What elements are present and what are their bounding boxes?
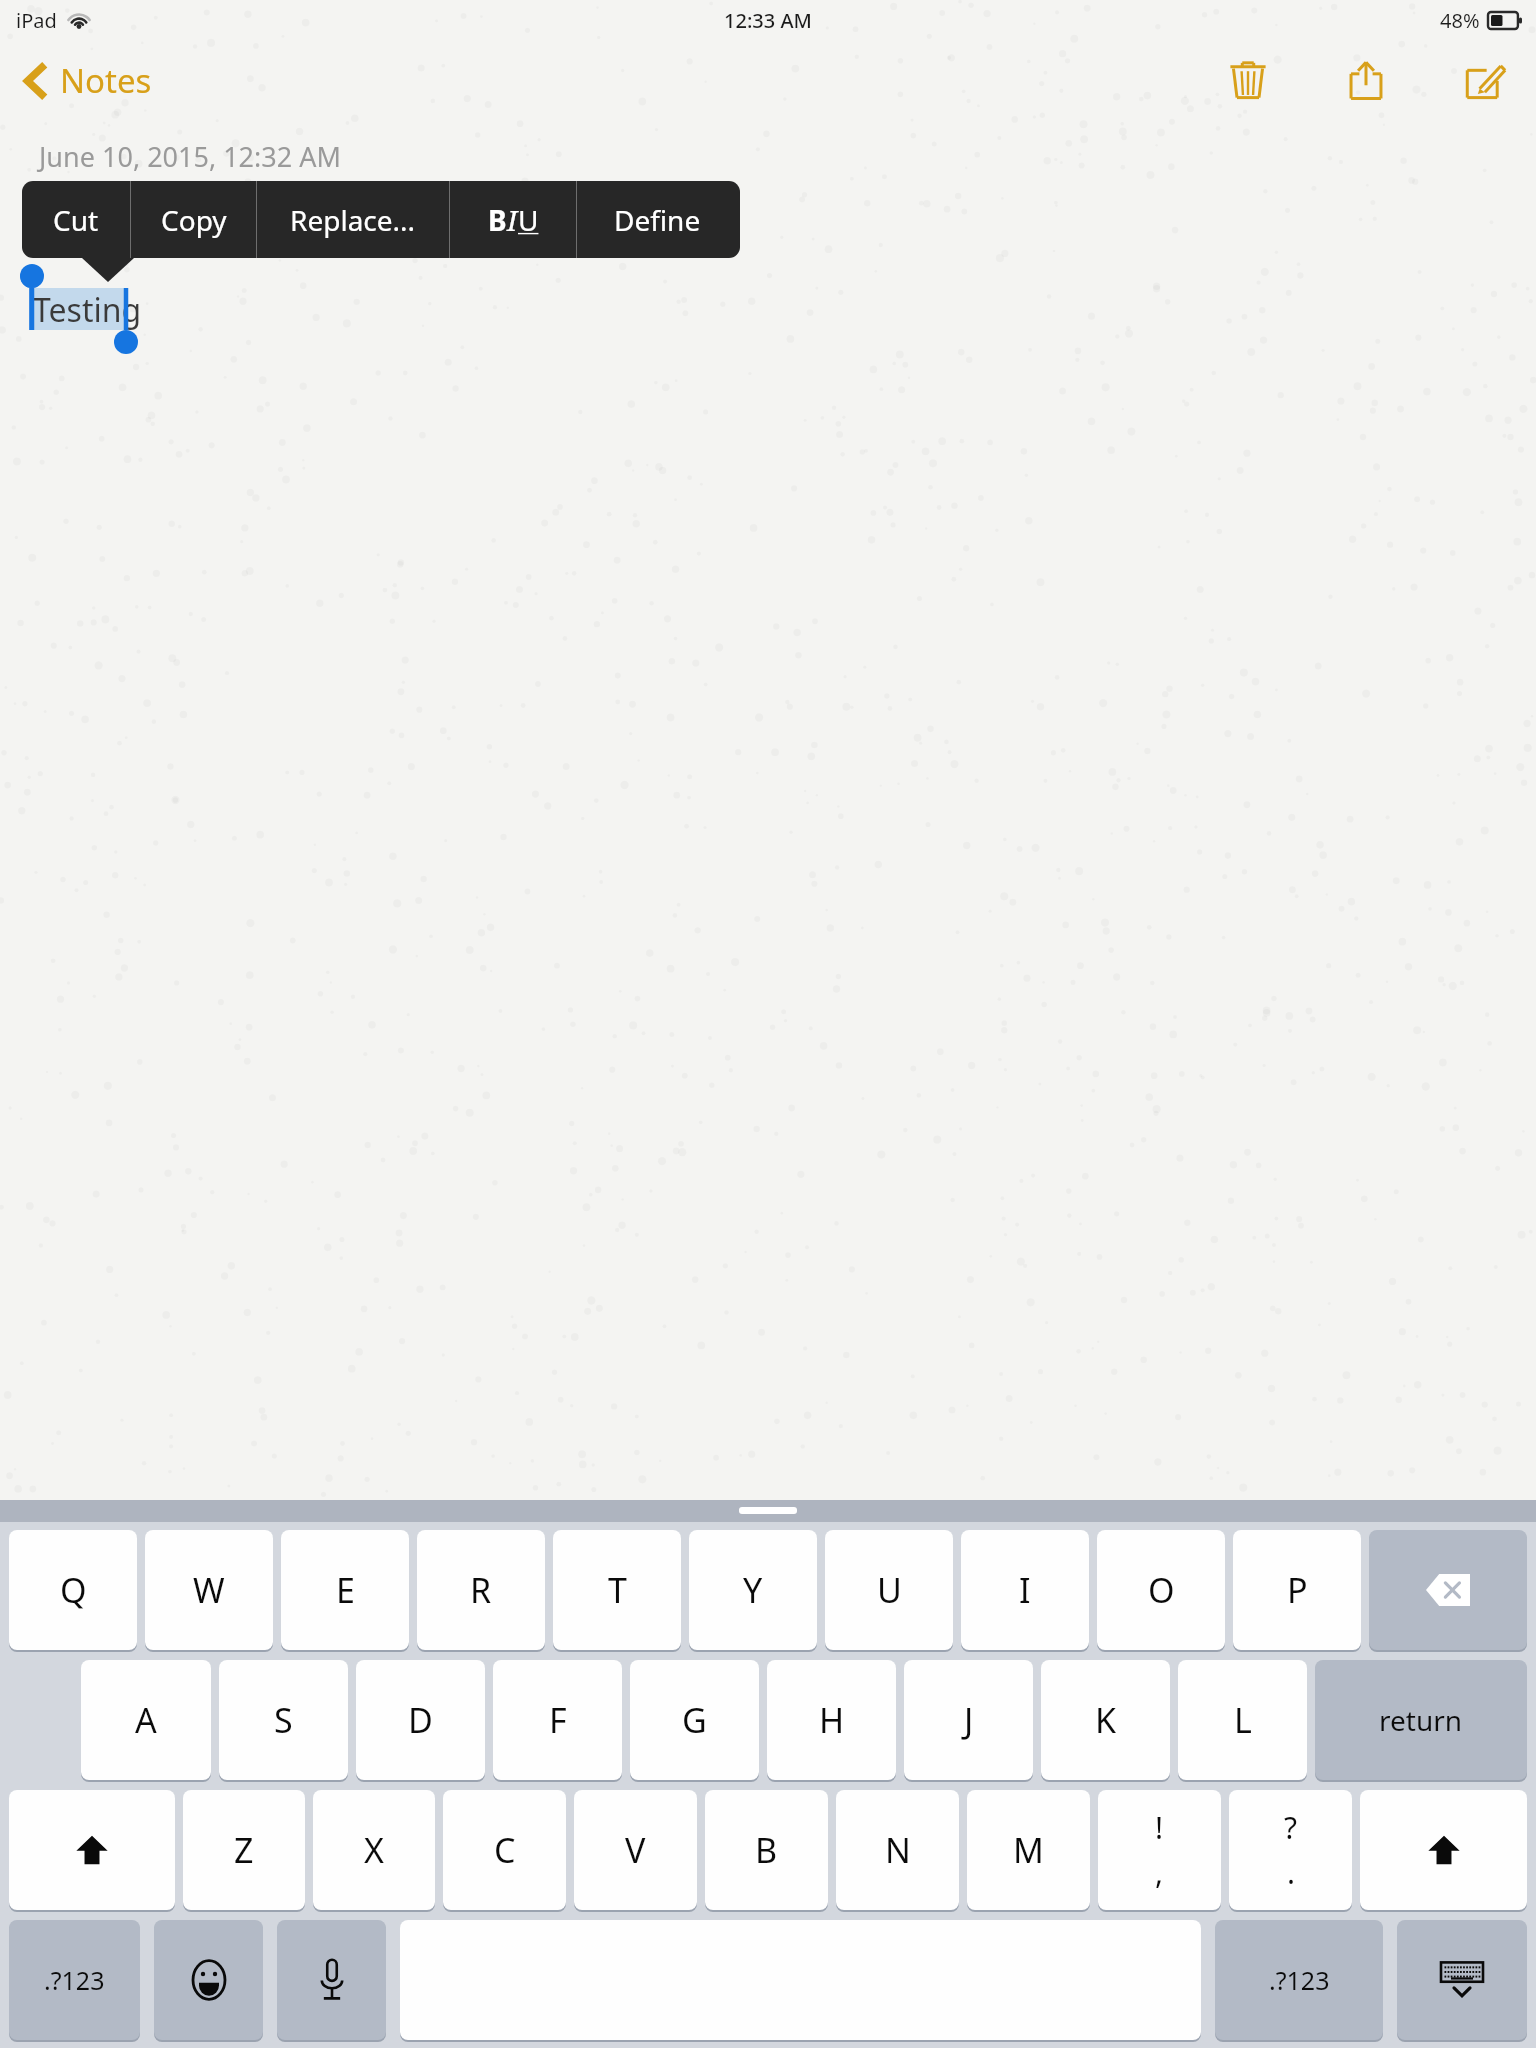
button[interactable]: Replace... [257,181,449,258]
button[interactable]: F [493,1660,622,1780]
button[interactable]: A [81,1660,211,1780]
staticText: 48% [1440,7,1480,34]
button[interactable]: Delete [1216,48,1280,112]
button[interactable]: Share [1334,48,1398,112]
button[interactable]: S [219,1660,348,1780]
button[interactable]: K [1041,1660,1170,1780]
staticText: P [1287,1567,1308,1613]
staticText: Z [234,1827,254,1873]
staticText: D [408,1697,433,1743]
button[interactable]: return [1315,1660,1527,1780]
staticText: L [1234,1697,1252,1743]
staticText: 12:33 AM [724,7,812,34]
button[interactable]: Z [183,1790,305,1910]
staticText: June 10, 2015, 12:32 AM [39,138,341,175]
button[interactable]: B [705,1790,828,1910]
button[interactable]: J [904,1660,1033,1780]
staticText: E [336,1567,355,1613]
button[interactable]: I [961,1530,1089,1650]
button[interactable]: Copy [131,181,256,258]
button[interactable]: E [281,1530,409,1650]
staticText: F [549,1697,567,1743]
button[interactable]: Emoji [154,1920,263,2040]
button[interactable]: L [1178,1660,1307,1780]
staticText: Copy [161,201,227,239]
button[interactable]: V [574,1790,697,1910]
button[interactable]: P [1233,1530,1361,1650]
button[interactable]: U [825,1530,953,1650]
staticText: Define [614,201,701,239]
staticText: K [1095,1697,1117,1743]
staticText: C [494,1827,516,1873]
button[interactable]: .?123 [1215,1920,1383,2040]
staticText: B [755,1827,778,1873]
button[interactable]: Dictation [277,1920,386,2040]
button[interactable]: N [836,1790,959,1910]
button[interactable]: .?123 [9,1920,140,2040]
staticText: B [488,201,507,239]
button[interactable]: D [356,1660,485,1780]
staticText: V [625,1827,646,1873]
staticText: O [1148,1567,1175,1613]
staticText: .?123 [44,1963,105,1997]
button[interactable]: G [630,1660,759,1780]
staticText: I [507,201,518,239]
button[interactable]: Shift [1360,1790,1527,1910]
button[interactable]: Notes [18,50,158,111]
staticText: Notes [60,58,152,103]
staticText: T [608,1567,627,1613]
button[interactable]: H [767,1660,896,1780]
staticText: Q [60,1567,87,1613]
button[interactable]: B [450,181,576,258]
staticText: Testing [33,288,142,332]
staticText: M [1013,1827,1044,1873]
staticText: .?123 [1269,1963,1330,1997]
button[interactable]: Exclamation comma [1098,1790,1221,1910]
staticText: , [1155,1852,1164,1893]
staticText: A [135,1697,157,1743]
staticText: ? [1284,1807,1298,1848]
button[interactable]: Y [689,1530,817,1650]
button[interactable]: Define [577,181,737,258]
staticText: iPad [16,7,57,34]
button[interactable]: T [553,1530,681,1650]
staticText: ! [1155,1807,1164,1848]
button[interactable]: Hide keyboard [1397,1920,1527,2040]
button[interactable]: W [145,1530,273,1650]
staticText: J [964,1697,974,1743]
staticText: N [885,1827,911,1873]
staticText: U [877,1567,902,1613]
staticText: Y [743,1567,763,1613]
button[interactable]: Compose [1452,48,1516,112]
button[interactable]: M [967,1790,1090,1910]
button[interactable]: Backspace [1369,1530,1527,1650]
button[interactable]: Q [9,1530,137,1650]
staticText: G [682,1697,707,1743]
staticText: I [1019,1567,1031,1613]
staticText: R [470,1567,492,1613]
button[interactable]: Question period [1229,1790,1352,1910]
staticText: S [274,1697,293,1743]
button[interactable]: Cut [22,181,130,258]
staticText: Cut [53,201,99,239]
button[interactable]: O [1097,1530,1225,1650]
button[interactable]: Shift [9,1790,175,1910]
staticText: W [193,1567,225,1613]
staticText: return [1379,1701,1463,1739]
button[interactable]: C [443,1790,566,1910]
button[interactable]: R [417,1530,545,1650]
staticText: X [364,1827,384,1873]
staticText: H [819,1697,845,1743]
staticText: . [1287,1852,1296,1893]
button[interactable]: X [313,1790,435,1910]
staticText: U [518,201,539,239]
staticText: Replace... [290,201,416,239]
